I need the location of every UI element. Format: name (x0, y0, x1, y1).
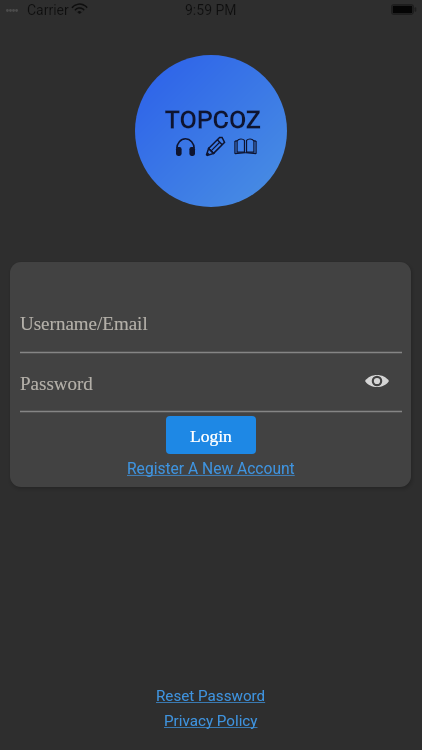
staticText: Register A New Account (127, 460, 295, 478)
button[interactable]: Privacy Policy (164, 712, 258, 730)
staticText: Reset Password (156, 687, 266, 705)
staticText: Password (20, 373, 93, 394)
staticText: Username/Email (20, 313, 148, 334)
staticText: Carrier (27, 2, 69, 18)
button[interactable]: Register A New Account (127, 460, 295, 478)
staticText: TOPCOZ (165, 105, 262, 134)
button[interactable]: Username/Email (20, 302, 402, 344)
staticText: Login (190, 426, 232, 445)
button[interactable]: Login (166, 416, 256, 454)
button[interactable]: Reset Password (156, 687, 266, 705)
button[interactable]: Show password (358, 362, 396, 400)
button[interactable]: Password (20, 362, 402, 404)
staticText: Privacy Policy (164, 712, 258, 730)
staticText: 9:59 PM (185, 2, 237, 18)
